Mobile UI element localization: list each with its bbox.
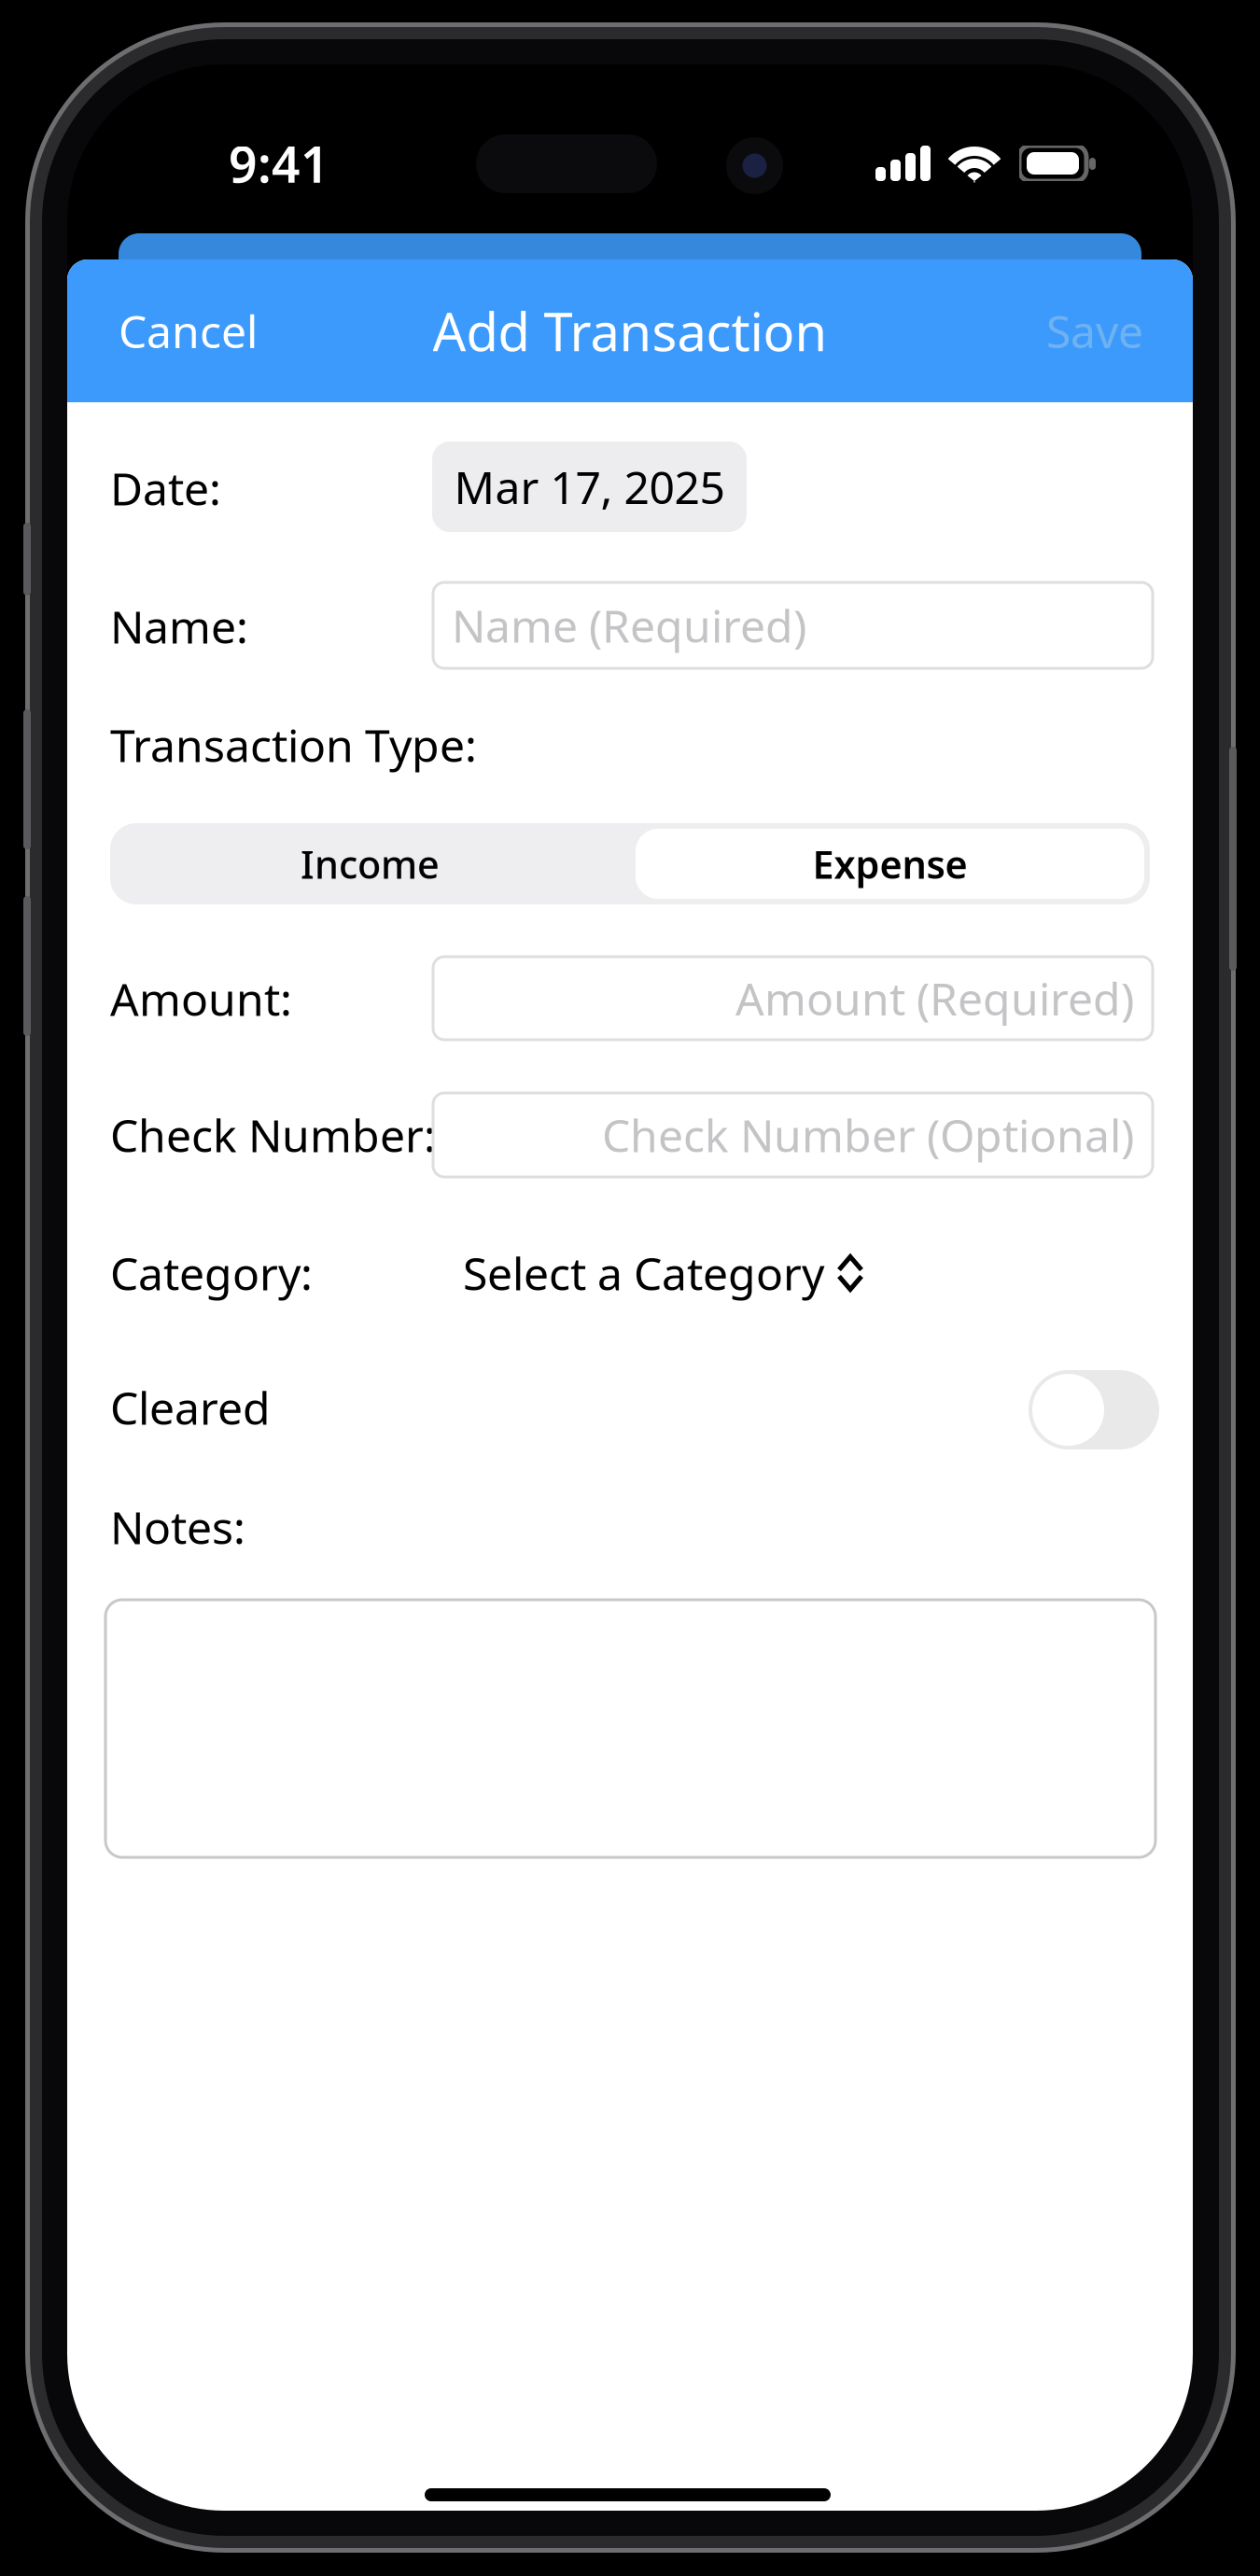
staticText: Notes: <box>110 1497 245 1557</box>
staticText: Save <box>1046 301 1143 361</box>
staticText: Income <box>301 838 440 889</box>
staticText: Amount (Required) <box>735 968 1134 1028</box>
button[interactable]: Cancel <box>91 259 305 402</box>
staticText: Mar 17, 2025 <box>454 457 725 516</box>
staticText: 9:41 <box>229 130 329 196</box>
button[interactable]: Select a Category <box>463 1245 861 1301</box>
button[interactable]: Mar 17, 2025 <box>432 441 747 532</box>
staticText: Date: <box>110 458 221 518</box>
staticText: Check Number: <box>110 1105 436 1165</box>
button[interactable]: Save <box>957 259 1171 402</box>
staticText: Check Number (Optional) <box>602 1105 1134 1165</box>
button[interactable]: Cleared <box>1029 1370 1159 1449</box>
staticText: Name (Required) <box>452 596 806 655</box>
staticText: Select a Category <box>463 1243 824 1303</box>
staticText: Amount: <box>110 969 292 1028</box>
staticText: Expense <box>812 838 967 889</box>
staticText: Category: <box>110 1243 313 1303</box>
staticText: Transaction Type: <box>110 715 477 774</box>
button[interactable]: Expense <box>630 823 1150 904</box>
button[interactable]: Income <box>110 823 630 904</box>
staticText: Add Transaction <box>433 296 827 366</box>
staticText: Name: <box>110 596 248 656</box>
staticText: Cleared <box>110 1378 271 1437</box>
staticText: Cancel <box>119 301 258 361</box>
